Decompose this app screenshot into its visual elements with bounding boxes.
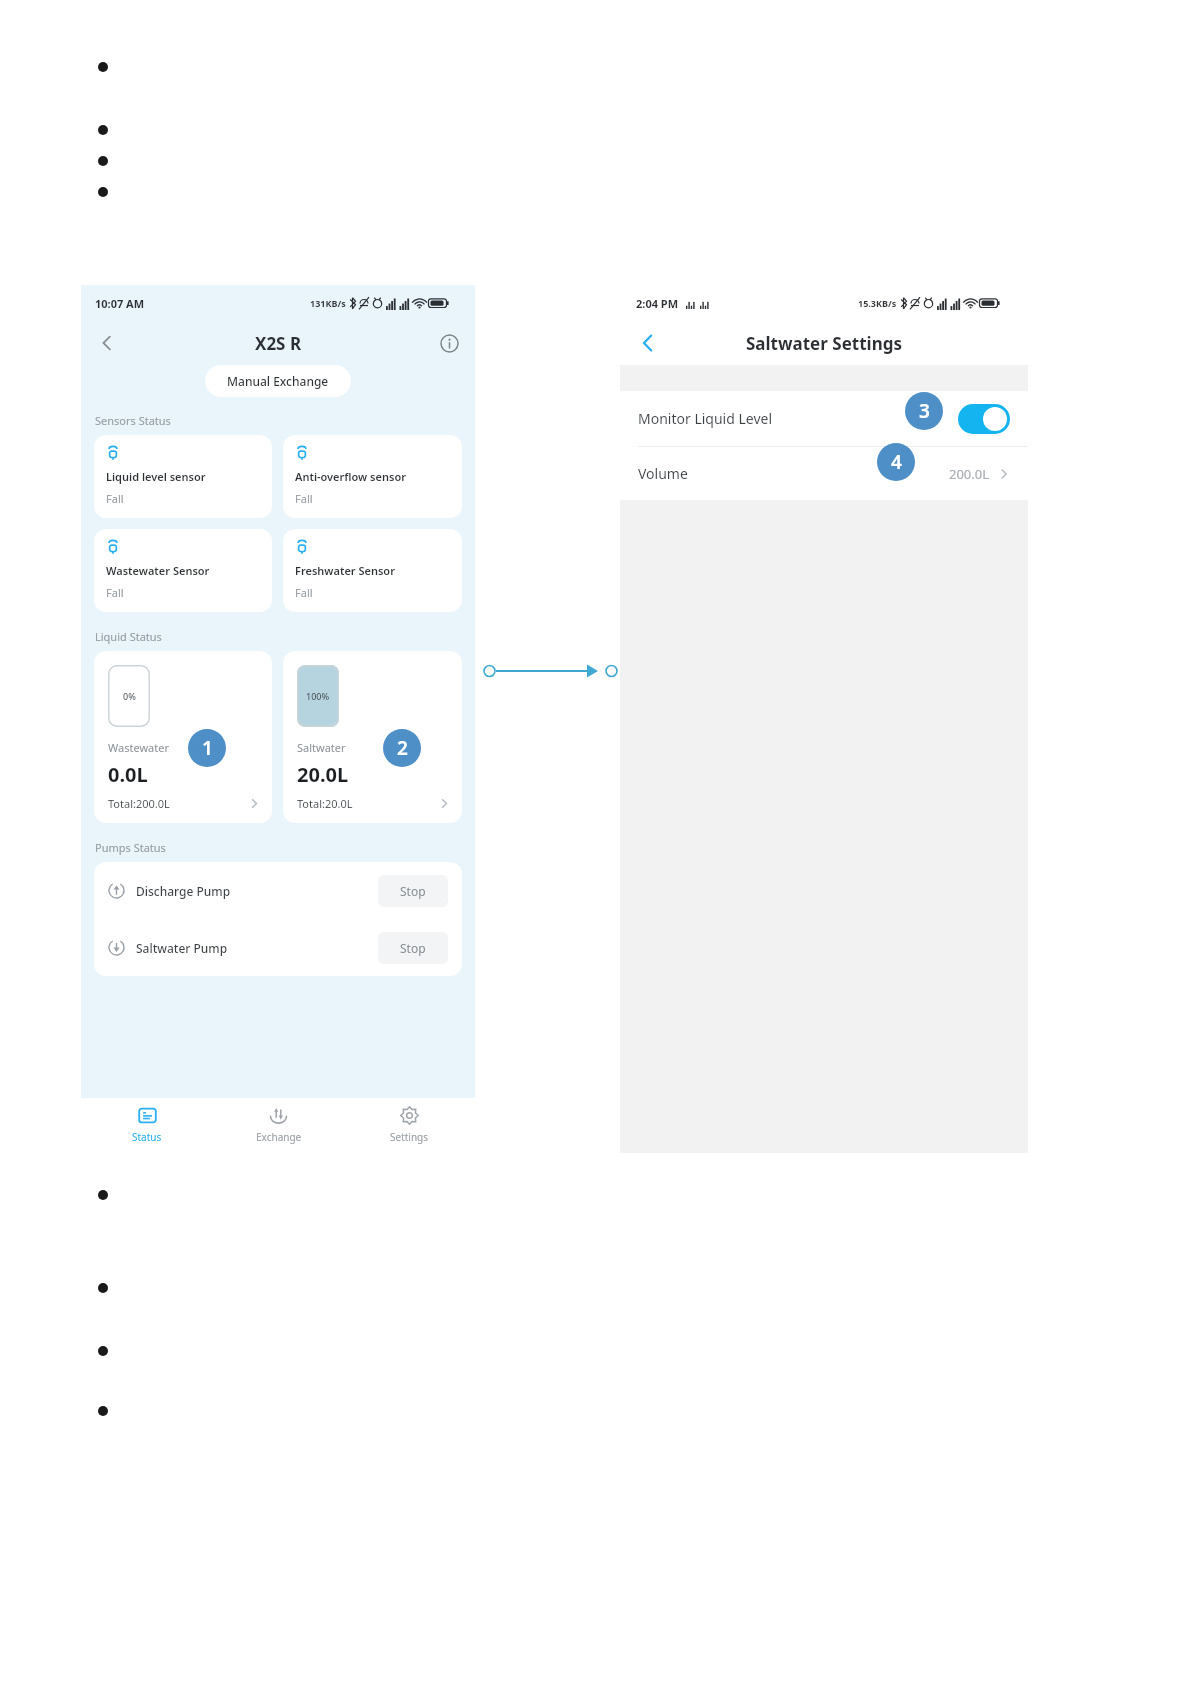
staticText: Freshwater Sensor [295, 563, 395, 578]
staticText: 100% [306, 690, 330, 702]
staticText: 131KB/s [310, 297, 346, 309]
button[interactable]: Status [81, 1098, 213, 1162]
staticText: Volume [638, 464, 688, 483]
staticText: 1 [202, 735, 213, 761]
button[interactable]: Freshwater Sensor [283, 529, 462, 612]
staticText: 0% [123, 690, 136, 702]
button[interactable]: Wastewater Sensor [94, 529, 272, 612]
staticText: Discharge Pump [136, 883, 231, 899]
button[interactable]: Discharge Pump [94, 862, 462, 919]
staticText: Anti-overflow sensor [295, 469, 406, 484]
button[interactable]: Device info [433, 327, 465, 359]
staticText: 4 [891, 449, 902, 475]
staticText: 15.3KB/s [858, 297, 897, 309]
staticText: Monitor Liquid Level [638, 409, 773, 428]
staticText: Manual Exchange [227, 373, 329, 389]
staticText: Sensors Status [95, 413, 171, 428]
button[interactable]: Manual Exchange [205, 365, 351, 397]
button[interactable]: Liquid level sensor [94, 435, 272, 518]
button[interactable]: 0% [94, 651, 272, 823]
staticText: Stop [400, 940, 426, 956]
staticText: Total:20.0L [297, 796, 353, 811]
staticText: 0.0L [108, 761, 148, 788]
staticText: 2 [397, 735, 408, 761]
staticText: 3 [919, 398, 930, 424]
staticText: 200.0L [949, 465, 990, 483]
staticText: Wastewater [108, 740, 169, 755]
button[interactable]: Back [89, 325, 125, 361]
button[interactable]: Monitor Liquid Level toggle [958, 404, 1010, 434]
button[interactable]: Stop [378, 932, 448, 964]
staticText: 2:04 PM [636, 296, 679, 311]
staticText: 20.0L [297, 761, 349, 788]
staticText: Settings [390, 1130, 429, 1144]
staticText: Exchange [256, 1130, 302, 1144]
staticText: X2S R [255, 332, 302, 355]
staticText: Saltwater Settings [746, 332, 902, 355]
button[interactable]: Saltwater Pump [94, 919, 462, 976]
staticText: Fall [106, 491, 124, 506]
button[interactable]: Settings [344, 1098, 475, 1162]
button[interactable]: Back [630, 325, 666, 361]
staticText: Saltwater [297, 740, 346, 755]
staticText: Total:200.0L [108, 796, 170, 811]
button[interactable]: 100% [283, 651, 462, 823]
staticText: Fall [106, 585, 124, 600]
staticText: Liquid Status [95, 629, 162, 644]
staticText: Pumps Status [95, 840, 166, 855]
button[interactable]: Anti-overflow sensor [283, 435, 462, 518]
staticText: Wastewater Sensor [106, 563, 210, 578]
staticText: Fall [295, 491, 313, 506]
staticText: Stop [400, 883, 426, 899]
staticText: 10:07 AM [95, 296, 145, 311]
staticText: Status [132, 1130, 162, 1144]
button[interactable]: Exchange [213, 1098, 344, 1162]
staticText: Liquid level sensor [106, 469, 206, 484]
button[interactable]: Monitor Liquid Level [620, 391, 1028, 446]
staticText: Saltwater Pump [136, 940, 228, 956]
button[interactable]: Stop [378, 875, 448, 907]
staticText: Fall [295, 585, 313, 600]
button[interactable]: Volume [620, 447, 1028, 500]
